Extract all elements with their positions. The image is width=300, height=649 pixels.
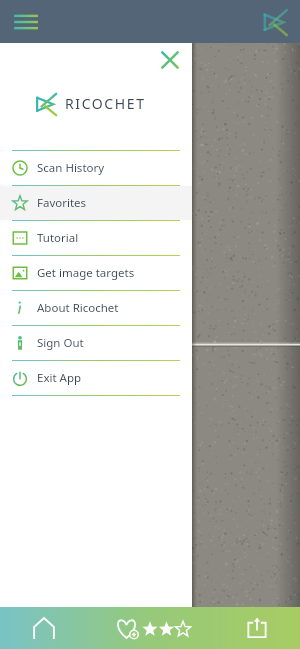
- button[interactable]: Ricochet: [260, 7, 290, 37]
- button[interactable]: Exit App: [0, 361, 192, 395]
- button[interactable]: About Ricochet: [0, 291, 192, 325]
- staticText: Tutorial: [37, 230, 79, 246]
- staticText: About Ricochet: [37, 300, 119, 316]
- button[interactable]: Home: [0, 607, 87, 649]
- button[interactable]: Sign Out: [0, 326, 192, 360]
- button[interactable]: Open navigation menu: [8, 4, 44, 40]
- button[interactable]: Favorites and rating: [87, 607, 213, 649]
- staticText: Get image targets: [37, 265, 135, 281]
- button[interactable]: Favorites: [0, 186, 192, 220]
- button[interactable]: Scan History: [0, 151, 192, 185]
- staticText: Exit App: [37, 370, 82, 386]
- staticText: Scan History: [37, 160, 105, 176]
- staticText: Favorites: [37, 195, 87, 211]
- button[interactable]: Get image targets: [0, 256, 192, 290]
- button[interactable]: Close menu: [158, 48, 182, 72]
- staticText: RICOCHET: [65, 94, 146, 113]
- staticText: Sign Out: [37, 335, 84, 351]
- button[interactable]: Share: [213, 607, 300, 649]
- button[interactable]: Tutorial: [0, 221, 192, 255]
